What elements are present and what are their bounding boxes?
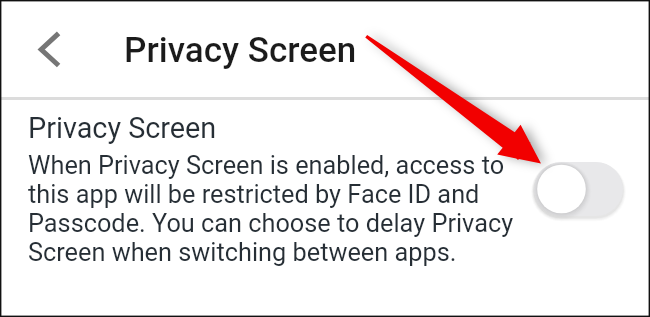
staticText: Privacy Screen xyxy=(28,111,217,145)
button[interactable]: Privacy Screen toggle xyxy=(534,162,623,216)
staticText: When Privacy Screen is enabled, access t… xyxy=(28,151,528,267)
staticText: Privacy Screen xyxy=(124,30,357,71)
button[interactable]: Back xyxy=(22,22,76,76)
